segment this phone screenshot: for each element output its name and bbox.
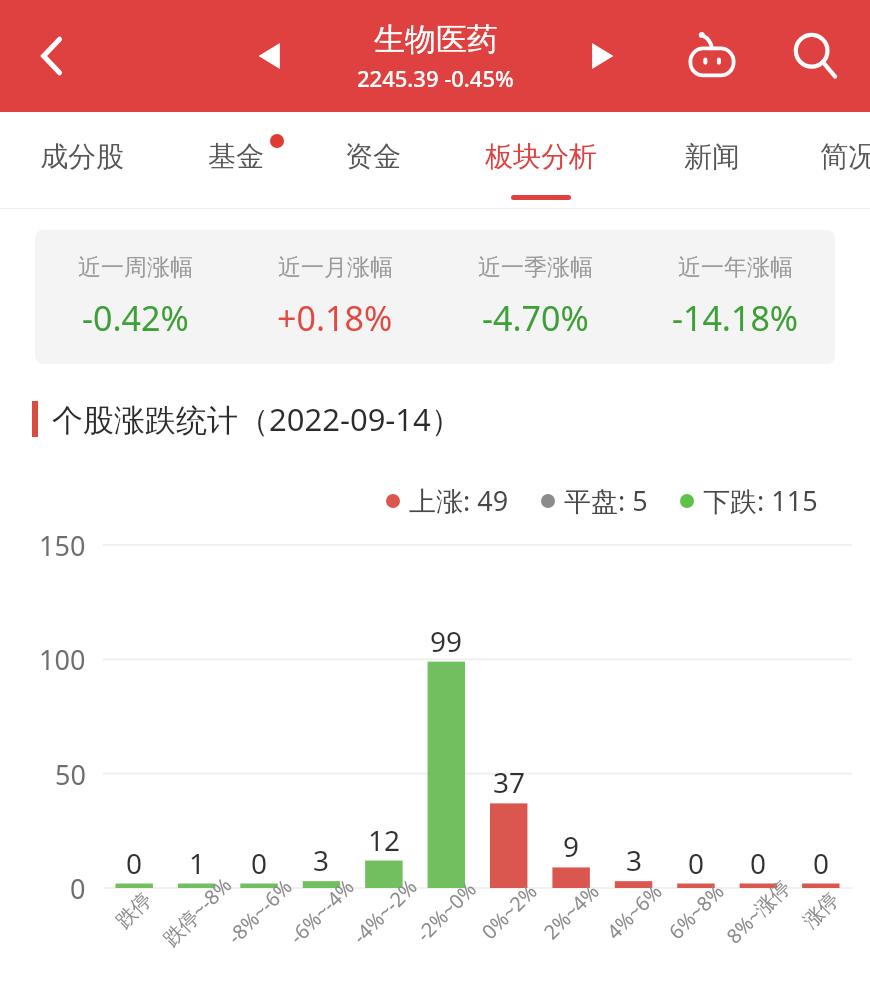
staticText: 0 [688,844,705,882]
staticText: 跌停~-8% [157,871,237,951]
staticText: 3 [626,841,643,879]
staticText: 150 [39,527,86,564]
staticText: 0 [70,870,86,907]
staticText: -8%~-6% [221,873,298,950]
button[interactable]: Search [778,19,852,93]
staticText: 9 [563,827,580,865]
staticText: -4.70% [482,295,589,341]
staticText: -2%~0% [410,876,482,947]
staticText: 100 [39,641,86,678]
staticText: 跌停 [111,887,157,933]
staticText: 0 [750,844,767,882]
button[interactable]: Back [20,24,84,88]
staticText: 近一月涨幅 [278,253,393,282]
button[interactable]: AI assistant [676,20,748,92]
staticText: -14.18% [672,295,799,341]
button[interactable]: Next sector [572,26,632,86]
staticText: 近一年涨幅 [678,253,793,282]
staticText: -6%~-4% [283,873,360,950]
staticText: 0 [126,844,143,882]
staticText: 0 [813,844,830,882]
staticText: 涨停 [798,887,844,933]
staticText: 8%~涨停 [720,874,796,949]
button[interactable]: 成分股 [32,112,132,209]
staticText: -0.42% [82,295,189,341]
staticText: 0 [251,844,268,882]
staticText: 个股涨跌统计（2022-09-14） [52,398,462,440]
staticText: 新闻 [684,139,740,174]
staticText: +0.18% [277,295,393,341]
staticText: 平盘: 5 [564,482,648,519]
staticText: -4%~-2% [346,873,423,950]
staticText: 基金 [208,139,264,174]
staticText: 99 [430,622,463,660]
staticText: 近一季涨幅 [478,253,593,282]
staticText: 1 [189,844,206,882]
staticText: 0%~2% [475,878,543,945]
staticText: 生物医药 [374,20,498,59]
button[interactable]: 板块分析 [475,112,607,209]
staticText: 板块分析 [485,139,597,174]
staticText: 2245.39 -0.45% [357,63,514,93]
staticText: 上涨: 49 [409,482,509,519]
staticText: 6%~8% [662,878,730,945]
staticText: 2%~4% [537,878,605,945]
staticText: 近一周涨幅 [78,253,193,282]
button[interactable]: 简况 [798,112,870,209]
button[interactable]: Previous sector [240,26,300,86]
button[interactable]: 基金 [186,112,286,209]
staticText: 4%~6% [600,878,668,945]
staticText: 成分股 [40,139,124,174]
staticText: 下跌: 115 [703,482,818,519]
staticText: 资金 [345,139,401,174]
button[interactable]: 资金 [323,112,423,209]
staticText: 3 [313,841,330,879]
staticText: 50 [55,756,86,793]
button[interactable]: 新闻 [662,112,762,209]
staticText: 12 [368,821,401,859]
staticText: 简况 [820,139,870,174]
staticText: 37 [493,763,526,801]
